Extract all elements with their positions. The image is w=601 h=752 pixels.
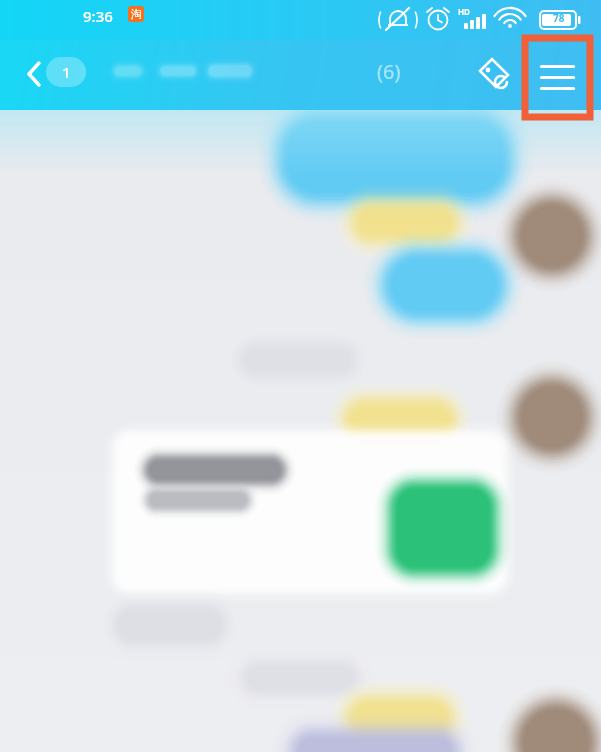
button[interactable]: 1 — [46, 57, 86, 87]
button[interactable]: Menu — [525, 38, 590, 117]
staticText: 78 — [553, 11, 565, 25]
staticText: HD — [458, 6, 470, 17]
button[interactable]: Tag — [470, 50, 518, 98]
button[interactable]: Back — [12, 52, 56, 96]
staticText: (6) — [377, 58, 401, 85]
staticText: 淘 — [131, 7, 142, 21]
staticText: 9:36 — [83, 6, 113, 26]
staticText: 1 — [62, 62, 71, 82]
